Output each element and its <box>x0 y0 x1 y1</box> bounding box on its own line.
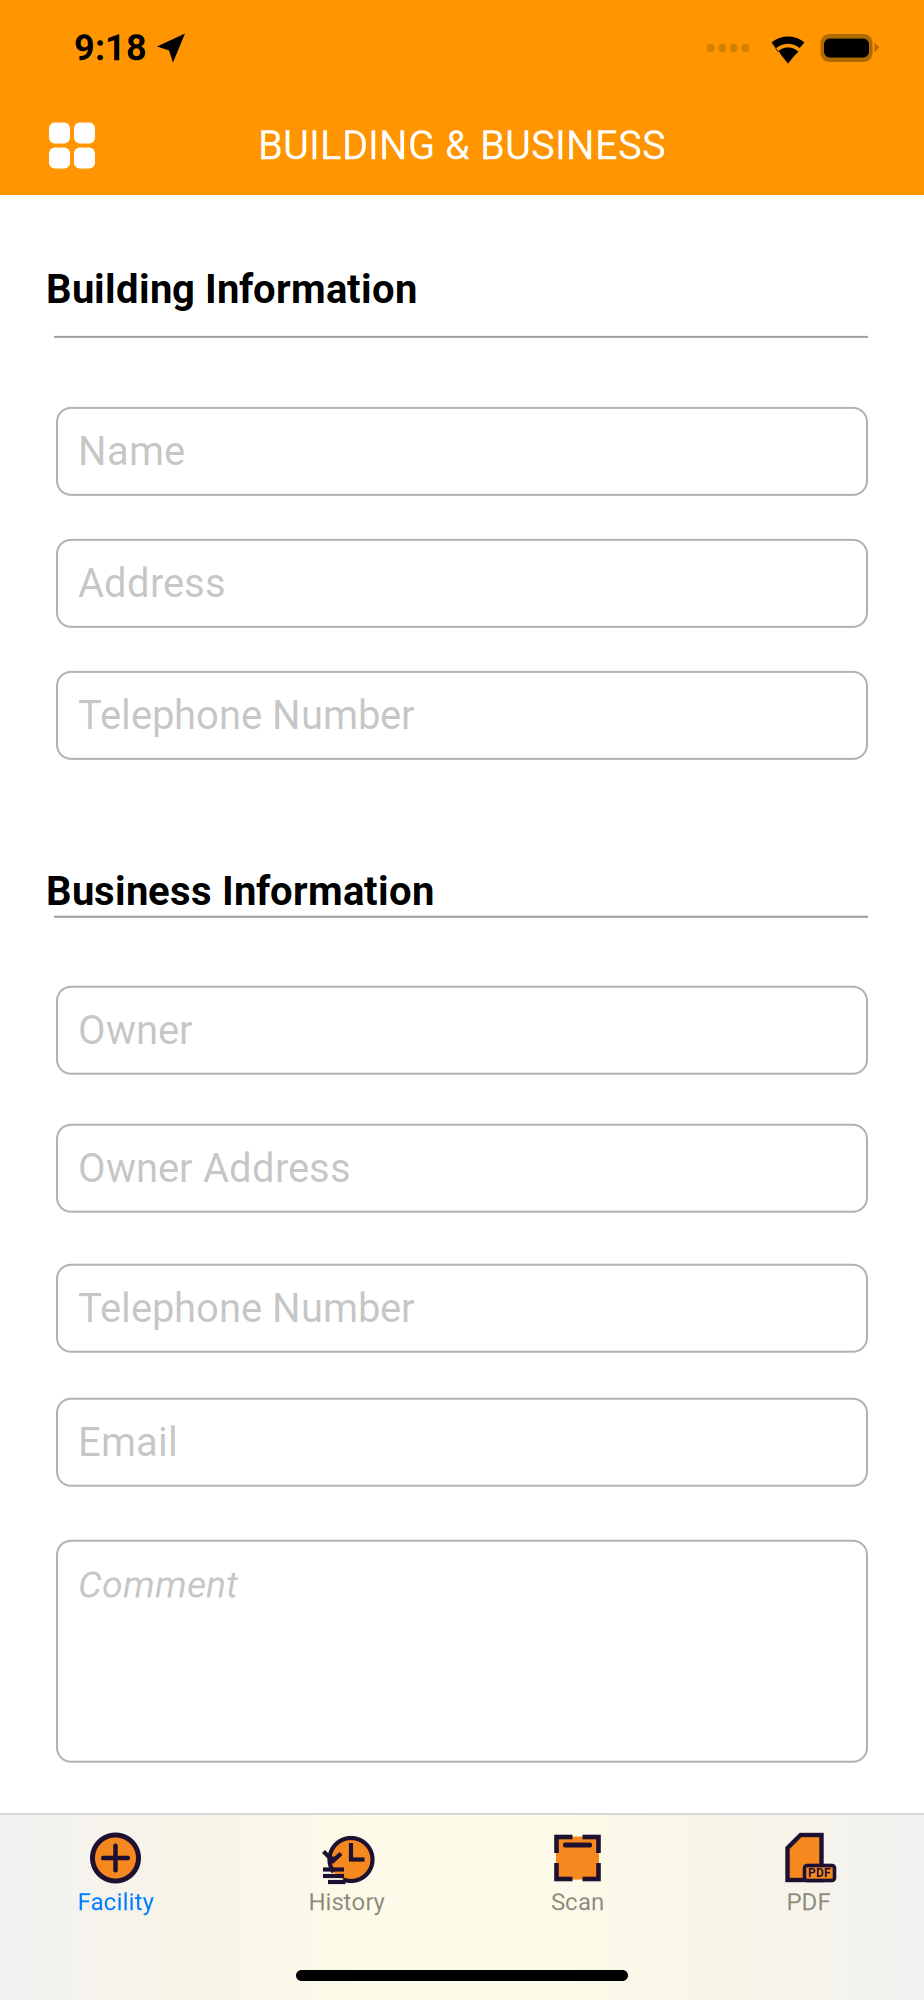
staticText: Building Information <box>46 266 417 313</box>
staticText: PDF <box>786 1888 830 1916</box>
button[interactable]: Menu <box>24 97 120 193</box>
button[interactable]: Comment <box>57 1541 867 1762</box>
staticText: Facility <box>77 1888 153 1916</box>
button[interactable]: Name <box>57 408 867 495</box>
staticText: PDF <box>808 1866 831 1880</box>
staticText: Address <box>78 560 226 607</box>
button[interactable]: Telephone Number <box>57 1265 867 1352</box>
staticText: Owner <box>78 1007 193 1054</box>
button[interactable]: Scan <box>462 1815 693 1927</box>
button[interactable]: Telephone Number <box>57 672 867 759</box>
button[interactable]: Owner Address <box>57 1125 867 1212</box>
staticText: Name <box>78 428 185 475</box>
button[interactable]: Email <box>57 1399 867 1486</box>
staticText: History <box>308 1888 384 1916</box>
staticText: Business Information <box>46 868 434 915</box>
button[interactable]: Owner <box>57 987 867 1074</box>
staticText: Telephone Number <box>78 1285 415 1332</box>
staticText: 9:18 <box>74 27 147 69</box>
button[interactable]: Address <box>57 540 867 627</box>
staticText: Comment <box>78 1563 238 1606</box>
staticText: BUILDING & BUSINESS <box>258 122 666 169</box>
button[interactable]: History <box>231 1815 462 1927</box>
staticText: Email <box>78 1419 178 1466</box>
staticText: Scan <box>551 1888 604 1916</box>
button[interactable]: PDF <box>693 1815 924 1927</box>
button[interactable]: Facility <box>0 1815 231 1927</box>
staticText: Owner Address <box>78 1145 351 1192</box>
staticText: Telephone Number <box>78 692 415 739</box>
